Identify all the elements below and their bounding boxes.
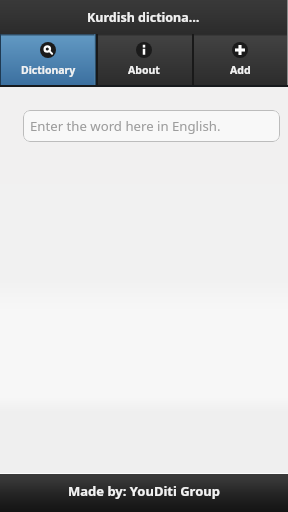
button[interactable]: Add tab <box>192 34 288 87</box>
staticText: Dictionary <box>21 63 76 77</box>
button[interactable]: Enter the word here in English. <box>23 110 280 142</box>
staticText: Enter the word here in English. <box>30 117 221 135</box>
staticText: Add <box>230 63 251 77</box>
button[interactable]: Dictionary tab <box>0 34 96 87</box>
staticText: Made by: YouDiti Group <box>68 482 220 500</box>
staticText: About <box>128 63 160 77</box>
staticText: Kurdish dictiona… <box>87 9 200 26</box>
button[interactable]: About tab <box>96 34 192 87</box>
